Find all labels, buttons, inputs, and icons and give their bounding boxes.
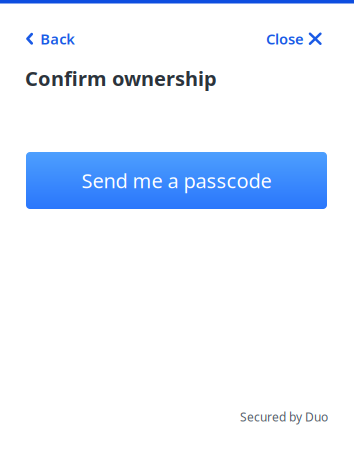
button[interactable]: Back [26,24,81,53]
staticText: Close [266,29,304,48]
staticText: Confirm ownership [25,65,217,92]
staticText: Secured by Duo [240,409,328,425]
button[interactable]: Close [260,24,322,53]
staticText: Back [40,29,75,48]
staticText: Send me a passcode [81,167,271,194]
button[interactable]: Send me a passcode [26,152,327,209]
